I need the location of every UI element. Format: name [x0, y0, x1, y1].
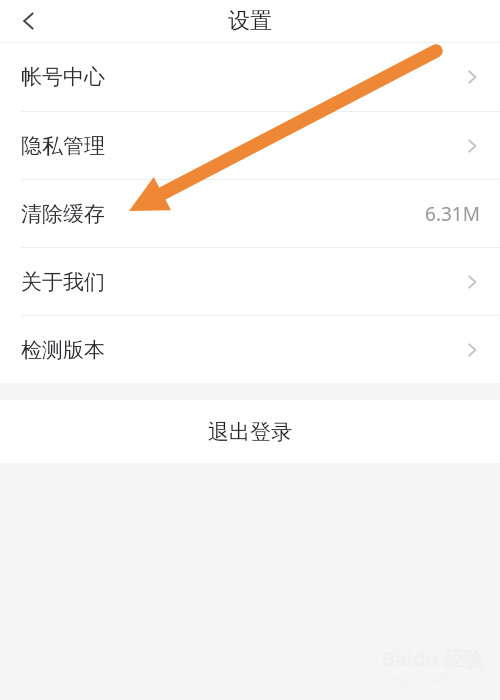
staticText: 设置 — [228, 7, 272, 35]
button[interactable]: 清除缓存 — [0, 180, 500, 247]
staticText: 帐号中心 — [21, 64, 105, 90]
button[interactable]: 关于我们 — [0, 248, 500, 315]
button[interactable]: 帐号中心 — [0, 43, 500, 111]
button[interactable]: 退出登录 — [0, 400, 500, 463]
staticText: 关于我们 — [21, 269, 105, 295]
button[interactable]: Back — [0, 0, 58, 42]
staticText: 检测版本 — [21, 337, 105, 363]
staticText: 退出登录 — [208, 419, 292, 445]
staticText: 清除缓存 — [21, 201, 105, 227]
button[interactable]: 隐私管理 — [0, 112, 500, 179]
staticText: 6.31M — [425, 201, 480, 227]
staticText: 隐私管理 — [21, 133, 105, 159]
button[interactable]: 检测版本 — [0, 316, 500, 383]
